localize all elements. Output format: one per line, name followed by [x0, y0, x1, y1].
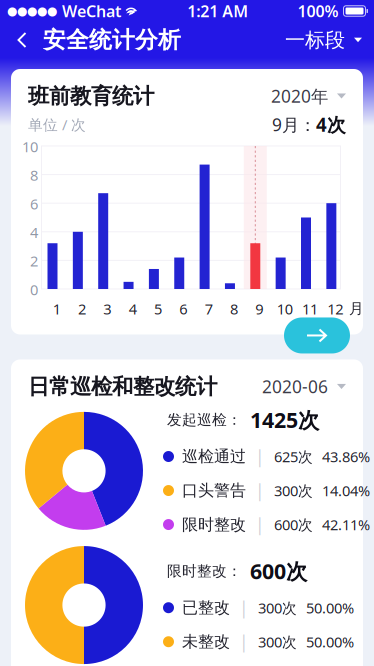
button[interactable]: 2020年 — [271, 85, 346, 108]
staticText: | — [255, 513, 265, 536]
staticText: 2020-06 — [262, 375, 328, 398]
staticText: ●●●●● — [7, 4, 57, 18]
staticText: 42.11% — [322, 515, 370, 534]
staticText: 10 — [277, 299, 293, 318]
staticText: 月 — [349, 300, 364, 318]
staticText: 日常巡检和整改统计 — [28, 373, 217, 400]
staticText: 已整改 — [182, 598, 230, 618]
staticText: 9 — [255, 299, 263, 318]
staticText: 600次 — [250, 557, 307, 585]
button[interactable]: Back — [5, 23, 39, 57]
staticText: 7 — [205, 299, 213, 318]
staticText: 4 — [129, 299, 137, 318]
staticText: | — [239, 596, 249, 619]
staticText: 发起巡检： — [167, 411, 242, 429]
staticText: 9月： — [272, 113, 316, 136]
staticText: 2 — [30, 251, 38, 271]
staticText: 300次 — [274, 481, 313, 500]
staticText: 300次 — [258, 632, 297, 651]
staticText: 14.04% — [322, 481, 370, 500]
staticText: 限时整改： — [167, 562, 242, 580]
staticText: 12 — [327, 299, 343, 318]
staticText: 50.00% — [306, 598, 354, 617]
staticText: | — [255, 479, 265, 502]
staticText: 300次 — [258, 598, 297, 617]
staticText: 口头警告 — [182, 481, 246, 500]
staticText: 5 — [154, 299, 162, 318]
staticText: 一标段 — [285, 28, 345, 52]
staticText: 3 — [103, 299, 111, 318]
staticText: 4 — [30, 223, 38, 242]
staticText: 1:21 AM — [187, 0, 248, 22]
staticText: 6 — [179, 299, 187, 318]
staticText: 未整改 — [182, 632, 230, 652]
staticText: 1 — [53, 299, 61, 318]
staticText: 班前教育统计 — [28, 83, 154, 109]
staticText: 43.86% — [322, 447, 370, 466]
staticText: 2 — [78, 299, 86, 318]
staticText: 4次 — [316, 112, 346, 137]
staticText: 单位 / 次 — [28, 115, 86, 134]
staticText: 8 — [30, 165, 38, 185]
button[interactable]: 2020-06 — [262, 375, 346, 398]
staticText: 10 — [22, 137, 38, 156]
staticText: 6 — [30, 194, 38, 213]
staticText: 100% — [297, 0, 338, 22]
staticText: | — [255, 445, 265, 468]
staticText: 0 — [30, 280, 38, 299]
staticText: 限时整改 — [182, 515, 246, 534]
staticText: 11 — [302, 299, 318, 318]
staticText: 2020年 — [271, 85, 328, 108]
staticText: 8 — [230, 299, 238, 318]
button[interactable]: Next — [284, 317, 350, 353]
staticText: | — [239, 630, 249, 653]
staticText: WeChat — [62, 0, 121, 22]
staticText: 625次 — [274, 447, 313, 466]
staticText: 1425次 — [250, 406, 319, 434]
button[interactable]: 一标段 — [273, 23, 374, 57]
staticText: 巡检通过 — [182, 447, 246, 466]
staticText: 50.00% — [306, 632, 354, 651]
staticText: 600次 — [274, 515, 313, 534]
staticText: 安全统计分析 — [43, 26, 181, 54]
